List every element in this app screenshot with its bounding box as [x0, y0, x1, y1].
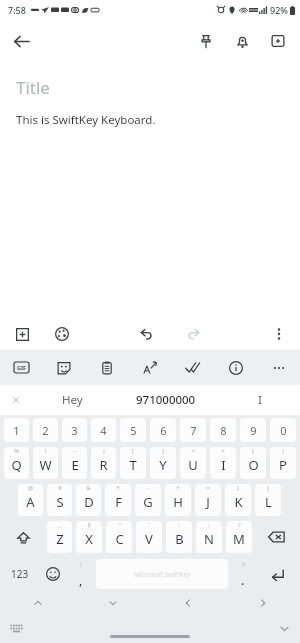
- button[interactable]: Archive: [260, 23, 296, 59]
- button[interactable]: 5: [120, 418, 146, 442]
- button[interactable]: $: [76, 521, 102, 553]
- button[interactable]: 9: [240, 418, 266, 442]
- button[interactable]: Close suggestions: [0, 385, 32, 415]
- button[interactable]: Redo: [179, 319, 209, 349]
- staticText: =: [206, 484, 210, 491]
- button[interactable]: 123: [2, 557, 38, 591]
- button[interactable]: Backspace: [254, 520, 298, 554]
- button[interactable]: Space: [96, 559, 228, 589]
- button[interactable]: Move cursor Left: [150, 593, 225, 613]
- button[interactable]: 4: [91, 418, 116, 442]
- button[interactable]: 8: [210, 418, 236, 442]
- button[interactable]: Keyboard: [5, 617, 27, 639]
- button[interactable]: Stickers: [42, 350, 85, 385]
- button[interactable]: Shift: [2, 520, 45, 554]
- button[interactable]: <: [180, 447, 206, 479]
- staticText: ?: [242, 561, 245, 569]
- button[interactable]: 2: [33, 418, 58, 442]
- button[interactable]: 6: [150, 418, 176, 442]
- button[interactable]: [: [120, 447, 146, 479]
- button[interactable]: Colour: [48, 320, 76, 348]
- button[interactable]: -: [135, 484, 161, 516]
- staticText: -: [147, 484, 149, 491]
- staticText: J: [206, 493, 210, 511]
- button[interactable]: Undo: [131, 319, 161, 349]
- staticText: E: [71, 456, 79, 474]
- staticText: V: [145, 530, 153, 548]
- staticText: P: [279, 456, 287, 474]
- button[interactable]: Pin: [188, 23, 224, 59]
- button[interactable]: This is SwiftKey Keyboard.: [16, 112, 156, 128]
- button[interactable]: ;: [196, 521, 222, 553]
- button[interactable]: ]: [150, 447, 176, 479]
- button[interactable]: ): [270, 447, 296, 479]
- button[interactable]: *: [105, 484, 131, 516]
- button[interactable]: !: [68, 557, 94, 591]
- button[interactable]: >: [210, 447, 236, 479]
- staticText: 8: [220, 423, 227, 438]
- button[interactable]: Emoji: [38, 557, 68, 591]
- button[interactable]: _: [47, 521, 72, 553]
- staticText: O: [248, 456, 259, 474]
- button[interactable]: Add: [8, 320, 36, 348]
- button[interactable]: Clipboard: [85, 350, 128, 385]
- staticText: GIF: [17, 364, 27, 371]
- button[interactable]: 0: [270, 418, 296, 442]
- button[interactable]: Home: [110, 635, 190, 638]
- button[interactable]: Move cursor Up: [0, 593, 75, 613]
- button[interactable]: Move cursor Right: [225, 593, 300, 613]
- button[interactable]: ): [255, 484, 281, 516]
- staticText: ~: [73, 447, 77, 454]
- button[interactable]: Title: [16, 76, 50, 99]
- staticText: I: [258, 392, 262, 408]
- button[interactable]: %: [4, 447, 29, 479]
- button[interactable]: 7: [180, 418, 206, 442]
- button[interactable]: I: [219, 385, 300, 415]
- staticText: F: [115, 493, 122, 511]
- button[interactable]: More: [257, 350, 300, 385]
- button[interactable]: /: [226, 521, 252, 553]
- staticText: K: [234, 493, 243, 511]
- staticText: 6: [160, 423, 167, 438]
- staticText: 4: [100, 423, 107, 438]
- staticText: (: [237, 484, 239, 491]
- button[interactable]: Hey: [32, 385, 113, 415]
- staticText: 7: [190, 423, 197, 438]
- button[interactable]: +: [165, 484, 191, 516]
- button[interactable]: Back: [0, 20, 42, 62]
- button[interactable]: ~: [62, 447, 87, 479]
- staticText: 5: [130, 423, 137, 438]
- button[interactable]: Editor: [171, 350, 214, 385]
- button[interactable]: Enter: [256, 557, 298, 591]
- button[interactable]: Hide keyboard: [273, 617, 295, 639]
- button[interactable]: 1: [4, 418, 29, 442]
- button[interactable]: ': [136, 521, 162, 553]
- button[interactable]: &: [76, 484, 101, 516]
- button[interactable]: #: [47, 484, 72, 516]
- button[interactable]: @: [18, 484, 43, 516]
- staticText: ": [118, 521, 121, 528]
- staticText: @: [28, 484, 33, 491]
- button[interactable]: 3: [62, 418, 87, 442]
- button[interactable]: 971000000: [113, 385, 219, 415]
- button[interactable]: (: [225, 484, 251, 516]
- button[interactable]: GIF: [0, 350, 42, 385]
- button[interactable]: =: [195, 484, 221, 516]
- button[interactable]: More options: [264, 319, 294, 349]
- staticText: H: [173, 493, 183, 511]
- staticText: ': [148, 521, 150, 528]
- button[interactable]: Translate: [128, 350, 171, 385]
- button[interactable]: Info: [214, 350, 257, 385]
- button[interactable]: |: [91, 447, 116, 479]
- staticText: Z: [56, 530, 64, 548]
- button[interactable]: Add reminder: [224, 23, 260, 59]
- button[interactable]: \: [33, 447, 58, 479]
- staticText: 3: [71, 423, 78, 438]
- button[interactable]: :: [166, 521, 192, 553]
- staticText: Q: [11, 456, 22, 474]
- staticText: 7:58: [8, 4, 26, 16]
- button[interactable]: ": [106, 521, 132, 553]
- button[interactable]: ?: [230, 557, 256, 591]
- button[interactable]: (: [240, 447, 266, 479]
- button[interactable]: Move cursor Down: [75, 593, 150, 613]
